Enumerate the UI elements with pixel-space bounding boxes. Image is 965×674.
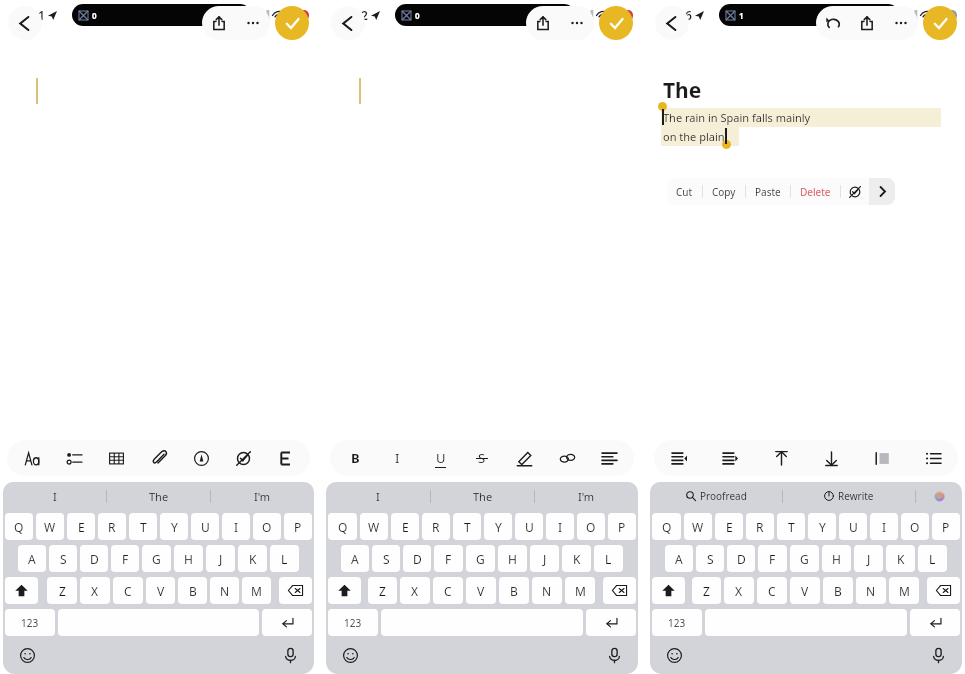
button[interactable]: Y [160,513,188,540]
button[interactable]: Done [923,6,957,40]
button[interactable]: More options [560,6,594,40]
button[interactable]: return [910,609,960,636]
button[interactable]: Backspace [603,577,636,604]
button[interactable]: Delete [800,178,831,205]
button[interactable]: More options [236,6,270,40]
button[interactable]: V [466,577,496,604]
button[interactable]: N [856,577,886,604]
button[interactable]: Writing tools [841,178,869,205]
button[interactable]: J [206,545,235,572]
button[interactable]: Y [808,513,836,540]
button[interactable]: Q [652,513,681,540]
button[interactable]: Dictate [278,643,302,667]
button[interactable]: Copy [712,178,736,205]
button[interactable]: X [724,577,754,604]
button[interactable]: I [3,482,106,510]
button[interactable]: T [777,513,805,540]
button[interactable]: Markup [186,443,216,473]
button[interactable]: Rewrite [783,482,915,510]
button[interactable]: Bold [270,443,300,473]
button[interactable]: E [715,513,743,540]
button[interactable]: Bulleted list [918,443,948,473]
button[interactable]: Backspace [279,577,312,604]
button[interactable]: Align [594,443,624,473]
button[interactable]: Backspace [927,577,960,604]
button[interactable]: F [758,545,787,572]
button[interactable]: U [515,513,543,540]
button[interactable]: return [262,609,312,636]
button[interactable]: Z [47,577,77,604]
button[interactable]: Q [5,513,33,540]
button[interactable]: Move down [816,443,846,473]
button[interactable]: Z [368,577,397,604]
button[interactable]: More [869,178,895,205]
button[interactable]: Link [552,443,582,473]
button[interactable]: U [839,513,867,540]
button[interactable]: I'm [535,482,638,510]
button[interactable]: W [360,513,388,540]
button[interactable]: R [746,513,774,540]
button[interactable]: S [467,443,497,473]
button[interactable]: J [530,545,559,572]
button[interactable]: C [113,577,143,604]
button[interactable]: 123 [5,609,55,636]
button[interactable]: R [422,513,450,540]
button[interactable]: Apple Intelligence [916,482,962,510]
button[interactable]: More options [884,6,918,40]
button[interactable]: G [466,545,495,572]
button[interactable]: O [577,513,605,540]
button[interactable]: Undo [816,6,850,40]
button[interactable]: C [757,577,787,604]
button[interactable]: D [727,545,755,572]
button[interactable]: S [372,545,400,572]
button[interactable]: Block [867,443,897,473]
button[interactable]: N [210,577,239,604]
button[interactable]: Scan [228,443,258,473]
button[interactable]: Dictate [602,643,626,667]
button[interactable]: Done [275,6,309,40]
button[interactable]: Outdent [664,443,694,473]
button[interactable]: K [562,545,591,572]
button[interactable]: O [253,513,281,540]
button[interactable]: Attach [144,443,174,473]
button[interactable]: F [434,545,463,572]
button[interactable]: H [174,545,203,572]
button[interactable]: Done [599,6,633,40]
button[interactable]: I'm [211,482,314,510]
button[interactable]: Share [526,6,560,40]
button[interactable]: D [80,545,108,572]
button[interactable]: U [191,513,219,540]
button[interactable]: L [270,545,299,572]
button[interactable]: X [80,577,110,604]
button[interactable]: S [696,545,724,572]
button[interactable]: A [665,545,693,572]
button[interactable]: Emoji [15,643,39,667]
button[interactable]: The [431,482,534,510]
button[interactable]: E [67,513,95,540]
button[interactable]: F [111,545,139,572]
button[interactable]: Checklist [59,443,89,473]
button[interactable]: Highlight [509,443,539,473]
button[interactable]: M [242,577,271,604]
button[interactable]: U [425,443,455,473]
button[interactable]: K [238,545,267,572]
button[interactable]: Back [331,6,365,40]
button[interactable]: M [565,577,595,604]
button[interactable]: B [499,577,529,604]
button[interactable]: I [222,513,250,540]
button[interactable]: Text format [17,443,47,473]
button[interactable]: M [889,577,919,604]
button[interactable]: T [453,513,481,540]
button[interactable]: Share [202,6,236,40]
button[interactable]: Dictate [926,643,950,667]
button[interactable]: Back [8,6,42,40]
button[interactable]: H [498,545,527,572]
button[interactable]: A [18,545,46,572]
button[interactable]: I [382,443,412,473]
button[interactable]: P [932,513,960,540]
button[interactable]: I [546,513,574,540]
button[interactable]: P [608,513,636,540]
button[interactable]: Proofread [650,482,782,510]
button[interactable]: B [823,577,853,604]
